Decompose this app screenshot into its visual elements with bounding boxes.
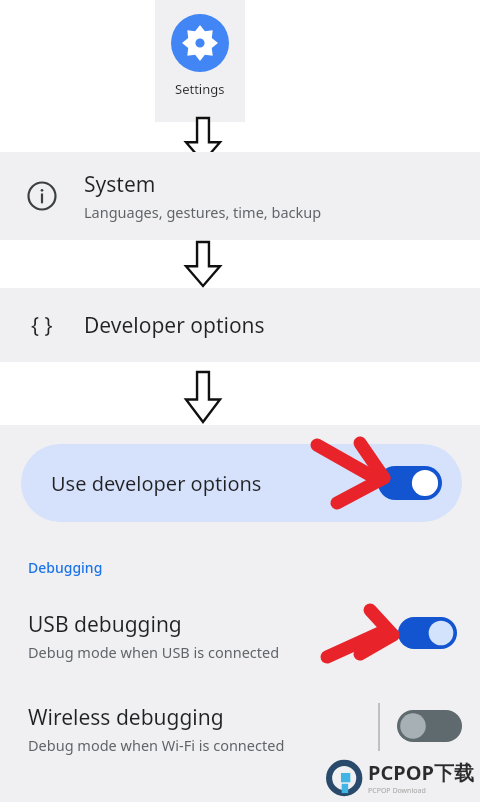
staticText: System	[84, 170, 156, 199]
staticText: Wireless debugging	[28, 703, 224, 732]
staticText: PCPOP Download	[368, 786, 426, 796]
button[interactable]: Toggle on	[378, 466, 442, 500]
button[interactable]: Settings	[155, 0, 245, 122]
staticText: Debug mode when USB is connected	[28, 642, 280, 662]
staticText: Debugging	[28, 558, 103, 577]
button[interactable]: USB debugging	[0, 601, 480, 671]
staticText: Settings	[175, 80, 225, 98]
staticText: Developer options	[84, 311, 265, 340]
button[interactable]: { }	[0, 288, 480, 362]
staticText: Languages, gestures, time, backup	[84, 202, 322, 222]
staticText: { }	[31, 311, 53, 340]
button[interactable]: Toggle off	[397, 710, 462, 742]
staticText: Debug mode when Wi-Fi is connected	[28, 735, 285, 755]
button[interactable]: System info	[0, 152, 480, 240]
button[interactable]: Wireless debugging	[0, 694, 480, 764]
other: Settings	[171, 14, 229, 72]
staticText: Use developer options	[51, 470, 262, 497]
staticText: PCPOP下载	[368, 759, 474, 786]
button[interactable]: Toggle on	[398, 617, 457, 649]
staticText: USB debugging	[28, 610, 182, 639]
other: System info	[27, 181, 57, 211]
button[interactable]: Use developer options	[21, 444, 462, 522]
